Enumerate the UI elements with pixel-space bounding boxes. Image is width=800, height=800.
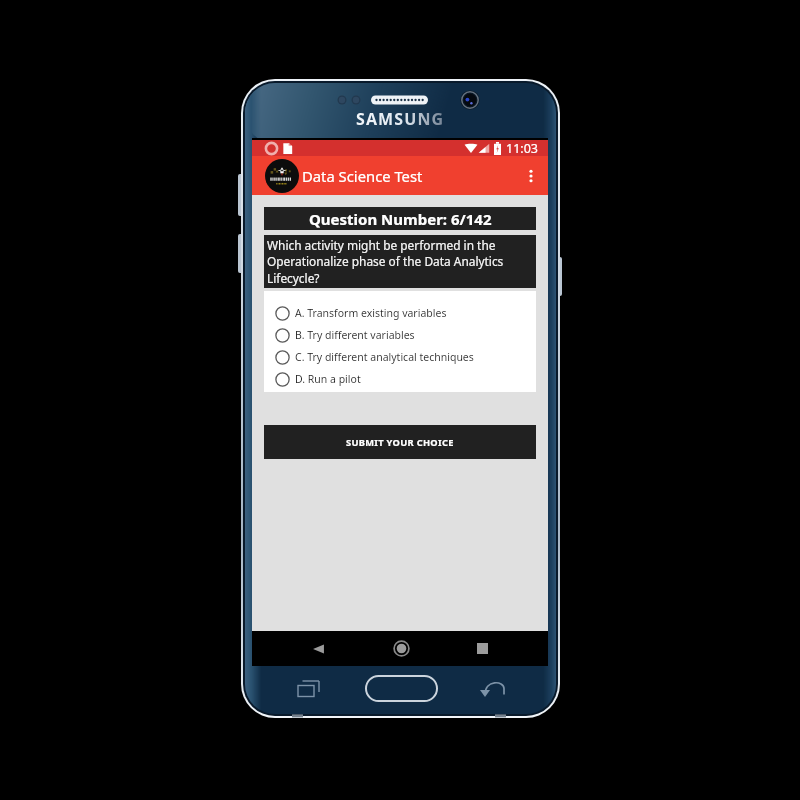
button[interactable]: More options: [514, 159, 548, 193]
staticText: B. Try different variables: [295, 328, 415, 342]
button[interactable]: Recents: [464, 631, 500, 666]
button[interactable]: SUBMIT YOUR CHOICE: [264, 425, 536, 459]
button[interactable]: D. Run a pilot: [264, 368, 536, 390]
button[interactable]: Back: [300, 631, 336, 666]
staticText: 11:03: [506, 140, 538, 156]
staticText: Data Science Test: [302, 166, 423, 186]
button[interactable]: C. Try different analytical techniques: [264, 346, 536, 368]
button[interactable]: A. Transform existing variables: [264, 302, 536, 324]
staticText: Which activity might be performed in the…: [267, 237, 533, 287]
button[interactable]: B. Try different variables: [264, 324, 536, 346]
staticText: A. Transform existing variables: [295, 306, 447, 320]
staticText: Question Number: 6/142: [309, 209, 492, 229]
staticText: D. Run a pilot: [295, 372, 361, 386]
button[interactable]: Home: [383, 631, 419, 666]
staticText: C. Try different analytical techniques: [295, 350, 474, 364]
staticText: SAMSUNG: [356, 108, 445, 130]
staticText: SUBMIT YOUR CHOICE: [346, 436, 454, 449]
